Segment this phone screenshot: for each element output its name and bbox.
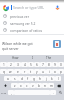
button[interactable]: o (52, 69, 58, 74)
staticText: 3 (17, 63, 19, 67)
button[interactable]: 5 (28, 62, 34, 67)
button[interactable]: samsung ver 5.2 (0, 19, 64, 26)
staticText: q (3, 70, 5, 74)
button[interactable]: , (8, 90, 14, 95)
button[interactable]: previous ver (0, 12, 64, 19)
button[interactable]: d (18, 76, 25, 81)
staticText: , (11, 91, 12, 95)
staticText: y (36, 70, 38, 74)
staticText: p (60, 70, 62, 74)
button[interactable]: comparison of ratios (0, 26, 64, 33)
staticText: I (32, 56, 34, 60)
staticText: z (14, 84, 16, 88)
staticText: 2 (10, 63, 12, 67)
button[interactable]: j (43, 76, 49, 81)
staticText: 5 (30, 63, 32, 67)
button[interactable]: Backspace (54, 83, 64, 88)
button[interactable]: q (0, 69, 7, 74)
staticText: 7 (42, 63, 44, 67)
button[interactable]: t (28, 69, 34, 74)
staticText: a (7, 77, 9, 81)
staticText: h (39, 77, 41, 81)
button[interactable]: Symbols (0, 90, 8, 95)
button[interactable]: 6 (34, 62, 40, 67)
button[interactable]: x (18, 83, 24, 88)
staticText: u (42, 70, 44, 74)
staticText: f (27, 77, 29, 81)
staticText: comparison of ratios (10, 28, 42, 32)
staticText: How (12, 56, 19, 60)
button[interactable]: Preview card (53, 40, 61, 48)
staticText: j (46, 77, 47, 81)
staticText: ?123 (1, 91, 7, 94)
staticText: s (14, 77, 16, 81)
button[interactable]: f (25, 76, 31, 81)
button[interactable]: a (4, 76, 11, 81)
staticText: x (20, 84, 22, 88)
staticText: 0 (60, 63, 62, 67)
staticText: l (58, 77, 59, 81)
staticText: w (9, 70, 12, 74)
button[interactable]: h (37, 76, 43, 81)
button[interactable]: Search (56, 90, 64, 95)
button[interactable]: 7 (40, 62, 46, 67)
staticText: Search or type URL (13, 5, 45, 10)
button[interactable]: l (55, 76, 61, 81)
staticText: Wilson while we got (2, 41, 33, 45)
staticText: 1 (3, 63, 5, 67)
staticText: i (49, 70, 50, 74)
button[interactable]: 2 (7, 62, 14, 67)
staticText: c (26, 84, 28, 88)
button[interactable]: g (31, 76, 37, 81)
staticText: b (38, 84, 40, 88)
button[interactable]: Shift (0, 83, 11, 88)
button[interactable]: i (46, 69, 52, 74)
button[interactable]: 0 (58, 62, 64, 67)
staticText: The (46, 56, 52, 60)
button[interactable]: 9 (52, 62, 58, 67)
button[interactable]: p (58, 69, 64, 74)
staticText: . (53, 91, 54, 95)
staticText: r (24, 70, 26, 74)
staticText: t (30, 70, 32, 74)
button[interactable]: 4 (21, 62, 28, 67)
staticText: 8 (48, 63, 50, 67)
button[interactable]: v (30, 83, 36, 88)
button[interactable]: . (50, 90, 56, 95)
button[interactable]: w (7, 69, 14, 74)
button[interactable]: Search or type URL (0, 3, 64, 12)
button[interactable]: b (36, 83, 42, 88)
staticText: k (51, 77, 53, 81)
button[interactable]: z (11, 83, 18, 88)
staticText: g (33, 77, 35, 81)
button[interactable]: 1 (0, 62, 7, 67)
button[interactable]: u (40, 69, 46, 74)
button[interactable]: r (21, 69, 28, 74)
button[interactable]: s (11, 76, 18, 81)
button[interactable]: m (48, 83, 54, 88)
staticText: n (44, 84, 46, 88)
staticText: previous ver (10, 14, 30, 18)
staticText: quit server (2, 46, 19, 50)
other: Voice search (55, 5, 60, 10)
staticText: 9 (54, 63, 56, 67)
staticText: samsung ver 5.2 (10, 21, 36, 25)
button[interactable]: y (34, 69, 40, 74)
button[interactable]: k (49, 76, 55, 81)
staticText: o (54, 70, 56, 74)
button[interactable]: e (14, 69, 21, 74)
button[interactable]: 8 (46, 62, 52, 67)
staticText: e (17, 70, 19, 74)
button[interactable]: n (42, 83, 48, 88)
button[interactable]: c (24, 83, 30, 88)
staticText: 4 (24, 63, 26, 67)
button[interactable]: 3 (14, 62, 21, 67)
staticText: d (21, 77, 23, 81)
staticText: 6 (36, 63, 38, 67)
staticText: m (50, 84, 53, 88)
staticText: v (32, 84, 34, 88)
